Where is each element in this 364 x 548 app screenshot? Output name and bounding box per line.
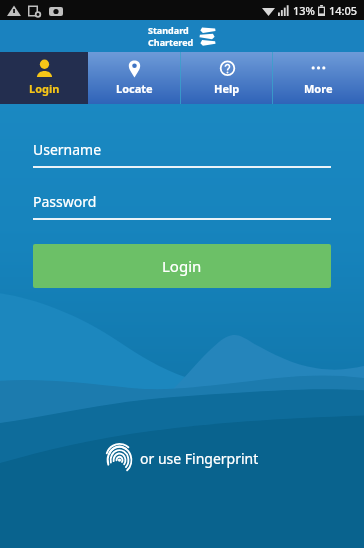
staticText: Locate bbox=[116, 81, 153, 96]
staticText: Chartered bbox=[148, 36, 194, 48]
other: Use Fingerprint bbox=[106, 445, 133, 472]
button[interactable]: Login bbox=[33, 244, 331, 288]
staticText: 13% bbox=[293, 3, 315, 18]
button[interactable]: Username bbox=[33, 140, 331, 168]
staticText: Login bbox=[29, 81, 60, 96]
staticText: or use Fingerprint bbox=[140, 449, 259, 468]
staticText: Login bbox=[162, 256, 202, 276]
button[interactable]: Login bbox=[0, 52, 88, 104]
staticText: Password bbox=[33, 192, 97, 211]
button[interactable]: Password bbox=[33, 192, 331, 220]
staticText: Username bbox=[33, 140, 102, 159]
staticText: Help bbox=[214, 81, 240, 96]
button[interactable]: Help bbox=[181, 52, 272, 104]
staticText: More bbox=[304, 81, 333, 96]
button[interactable]: Use Fingerprint bbox=[98, 441, 267, 476]
staticText: Standard bbox=[148, 24, 189, 36]
button[interactable]: More bbox=[273, 52, 364, 104]
button[interactable]: Locate bbox=[88, 52, 180, 104]
staticText: 14:05 bbox=[329, 3, 358, 18]
